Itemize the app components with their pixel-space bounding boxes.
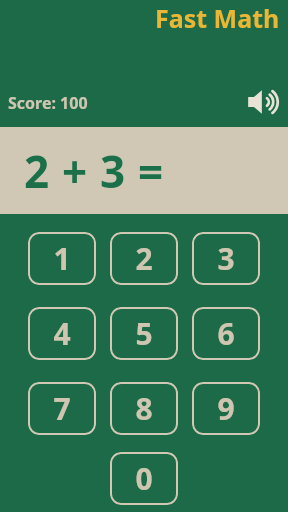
staticText: 6 bbox=[217, 313, 235, 354]
button[interactable]: 1 bbox=[28, 232, 96, 285]
button[interactable]: 5 bbox=[110, 307, 178, 360]
staticText: 3 bbox=[100, 141, 126, 201]
button[interactable]: 7 bbox=[28, 382, 96, 435]
staticText: = bbox=[138, 141, 164, 201]
button[interactable]: 2 bbox=[110, 232, 178, 285]
staticText: Score: 100 bbox=[8, 92, 88, 114]
button[interactable]: 8 bbox=[110, 382, 178, 435]
staticText: + bbox=[62, 141, 88, 201]
staticText: 8 bbox=[135, 388, 153, 429]
staticText: 4 bbox=[53, 313, 71, 354]
staticText: 5 bbox=[135, 313, 153, 354]
staticText: 2 bbox=[135, 238, 153, 279]
staticText: 1 bbox=[53, 238, 71, 279]
staticText: Fast Math bbox=[155, 1, 280, 35]
button[interactable]: 4 bbox=[28, 307, 96, 360]
button[interactable]: Sound on bbox=[246, 86, 282, 118]
button[interactable]: 9 bbox=[192, 382, 260, 435]
staticText: 7 bbox=[53, 388, 71, 429]
staticText: 3 bbox=[217, 238, 235, 279]
staticText: 2 bbox=[24, 141, 50, 201]
staticText: 9 bbox=[217, 388, 235, 429]
button[interactable]: 6 bbox=[192, 307, 260, 360]
staticText: 0 bbox=[135, 458, 153, 499]
button[interactable]: 3 bbox=[192, 232, 260, 285]
button[interactable]: 0 bbox=[110, 452, 178, 505]
